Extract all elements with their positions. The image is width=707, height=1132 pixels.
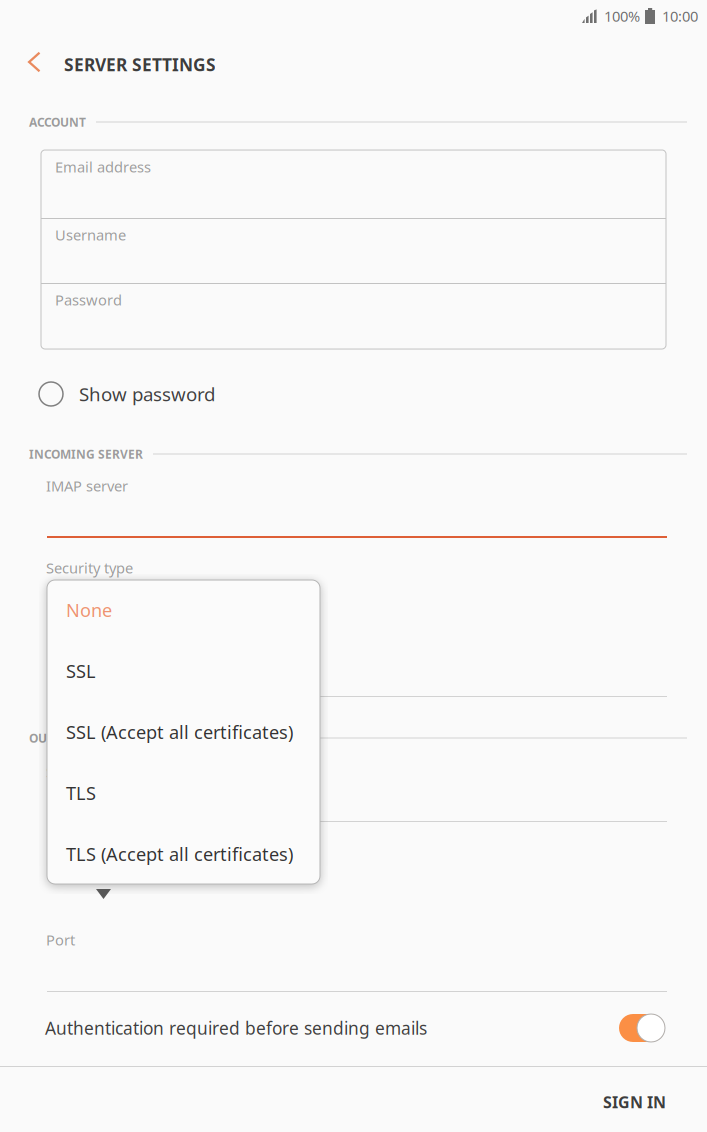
staticText: Username: [55, 225, 126, 244]
staticText: SSL (Accept all certificates): [66, 720, 293, 744]
staticText: 10:00: [662, 6, 698, 26]
button[interactable]: SSL: [47, 640, 320, 701]
staticText: Password: [55, 290, 122, 309]
staticText: Security type: [46, 558, 133, 577]
button[interactable]: TLS (Accept all certificates): [47, 823, 320, 884]
staticText: Email address: [55, 157, 151, 176]
button[interactable]: Back: [6, 37, 62, 87]
staticText: Port: [46, 930, 75, 949]
staticText: SMTP server: [46, 762, 130, 781]
staticText: SERVER SETTINGS: [64, 53, 216, 76]
staticText: SSL: [66, 659, 96, 683]
button[interactable]: None: [47, 579, 320, 640]
button[interactable]: Email address: [41, 152, 666, 223]
button[interactable]: SIGN IN: [0, 1070, 666, 1132]
staticText: Authentication required before sending e…: [45, 1016, 427, 1039]
staticText: TLS: [66, 781, 96, 805]
staticText: None: [66, 598, 112, 622]
staticText: TLS (Accept all certificates): [66, 842, 293, 866]
staticText: INCOMING SERVER: [29, 446, 143, 462]
staticText: SIGN IN: [603, 1091, 666, 1113]
staticText: ACCOUNT: [29, 114, 86, 130]
staticText: 100%: [604, 6, 640, 26]
button[interactable]: Show password: [39, 371, 339, 417]
button[interactable]: TLS: [47, 762, 320, 823]
button[interactable]: Username: [41, 220, 666, 291]
staticText: Show password: [79, 382, 215, 406]
button[interactable]: SSL (Accept all certificates): [47, 701, 320, 762]
staticText: OUTGOING SERVER: [29, 730, 144, 746]
button[interactable]: Password: [41, 285, 666, 356]
button[interactable]: Authentication required before sending e…: [45, 998, 665, 1058]
staticText: IMAP server: [46, 476, 128, 495]
